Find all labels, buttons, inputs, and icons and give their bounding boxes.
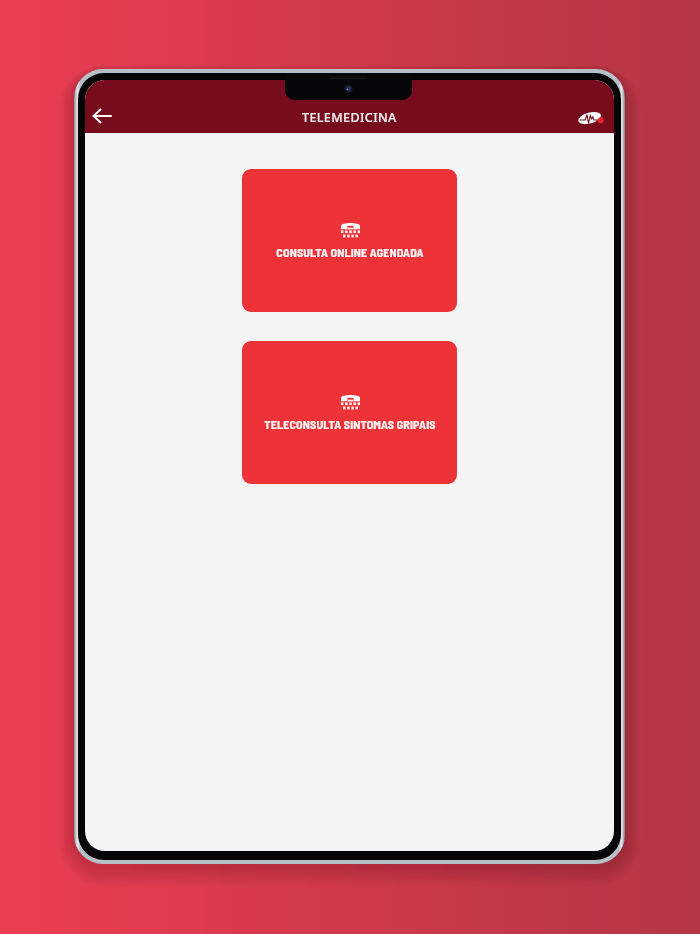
staticText: CONSULTA ONLINE AGENDADA [276,245,424,259]
button[interactable]: TELECONSULTA SINTOMAS GRIPAIS [242,341,457,484]
button[interactable]: App logo [576,103,606,133]
button[interactable]: Back [87,101,117,131]
staticText: TELECONSULTA SINTOMAS GRIPAIS [264,417,436,431]
staticText: TELEMEDICINA [302,109,397,126]
button[interactable]: CONSULTA ONLINE AGENDADA [242,169,457,312]
